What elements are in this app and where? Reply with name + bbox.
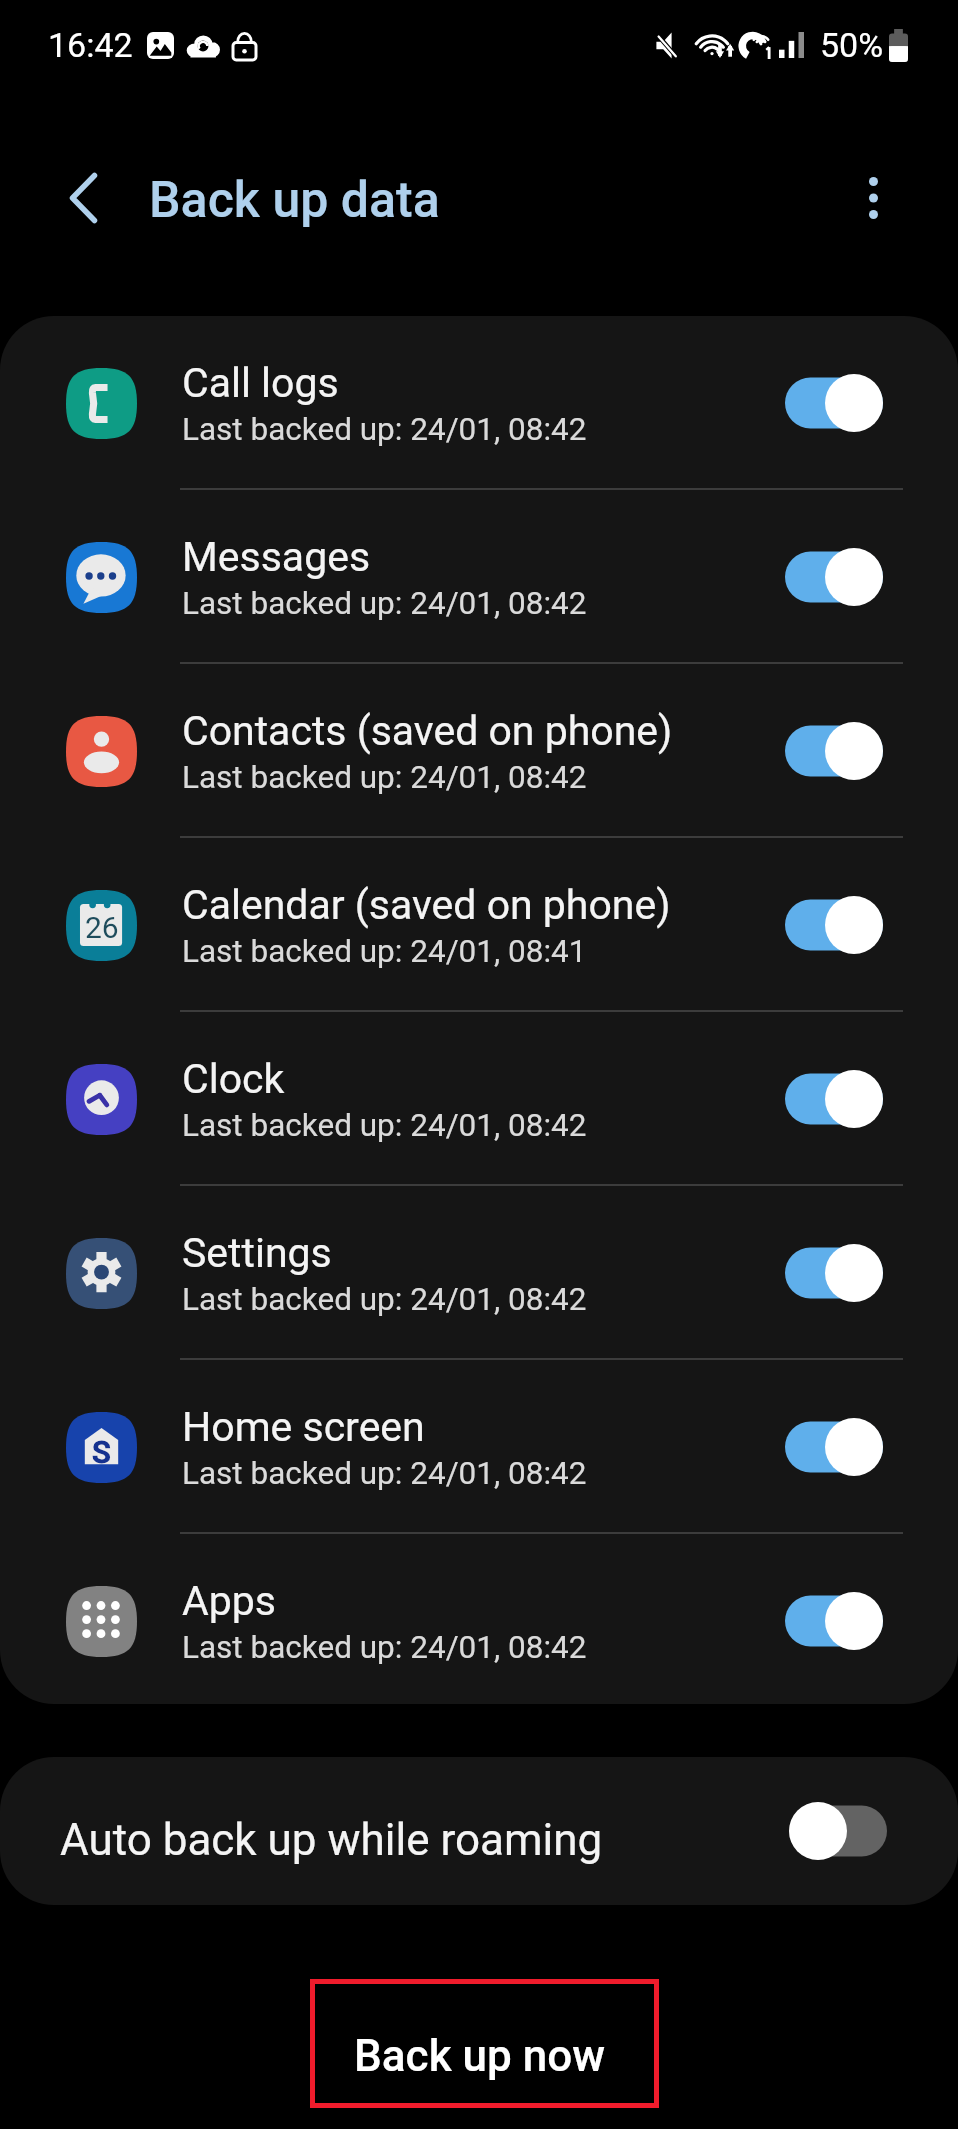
button[interactable]: On bbox=[785, 1418, 883, 1476]
staticText: 16:42 bbox=[48, 25, 133, 65]
button[interactable]: Clock bbox=[0, 1012, 958, 1186]
button[interactable]: On bbox=[785, 722, 883, 780]
button[interactable]: Auto back up while roaming bbox=[0, 1757, 958, 1905]
staticText: Messages bbox=[182, 533, 371, 581]
button[interactable]: Settings bbox=[0, 1186, 958, 1360]
staticText: Back up data bbox=[149, 171, 440, 230]
staticText: Back up now bbox=[354, 2030, 605, 2082]
staticText: Clock bbox=[182, 1055, 285, 1103]
staticText: Call logs bbox=[182, 359, 339, 407]
staticText: Last backed up: 24/01, 08:42 bbox=[182, 759, 587, 796]
staticText: 50% bbox=[820, 25, 884, 65]
button[interactable]: Contacts (saved on phone) bbox=[0, 664, 958, 838]
staticText: Auto back up while roaming bbox=[60, 1814, 603, 1866]
button[interactable]: Off bbox=[789, 1802, 887, 1860]
staticText: 26 bbox=[85, 910, 119, 945]
staticText: Last backed up: 24/01, 08:42 bbox=[182, 1629, 587, 1666]
staticText: Home screen bbox=[182, 1403, 425, 1451]
button[interactable]: More options bbox=[818, 143, 928, 253]
staticText: Settings bbox=[182, 1229, 332, 1277]
staticText: Last backed up: 24/01, 08:42 bbox=[182, 1107, 587, 1144]
staticText: Contacts (saved on phone) bbox=[182, 707, 673, 755]
button[interactable]: Call logs bbox=[0, 316, 958, 490]
button[interactable]: 26 bbox=[0, 838, 958, 1012]
staticText: S bbox=[92, 1434, 111, 1470]
button[interactable]: S bbox=[0, 1360, 958, 1534]
staticText: Apps bbox=[182, 1577, 276, 1625]
staticText: Last backed up: 24/01, 08:42 bbox=[182, 1281, 587, 1318]
button[interactable]: On bbox=[785, 548, 883, 606]
button[interactable]: On bbox=[785, 1070, 883, 1128]
staticText: Last backed up: 24/01, 08:42 bbox=[182, 585, 587, 622]
button[interactable]: On bbox=[785, 896, 883, 954]
button[interactable]: On bbox=[785, 1592, 883, 1650]
button[interactable]: On bbox=[785, 374, 883, 432]
button[interactable]: Navigate up bbox=[22, 138, 144, 258]
button[interactable]: Back up now bbox=[310, 1979, 659, 2108]
staticText: Last backed up: 24/01, 08:42 bbox=[182, 1455, 587, 1492]
button[interactable]: Apps bbox=[0, 1534, 958, 1704]
staticText: Last backed up: 24/01, 08:41 bbox=[182, 933, 587, 970]
button[interactable]: Messages bbox=[0, 490, 958, 664]
staticText: Calendar (saved on phone) bbox=[182, 881, 671, 929]
button[interactable]: On bbox=[785, 1244, 883, 1302]
staticText: Last backed up: 24/01, 08:42 bbox=[182, 411, 587, 448]
